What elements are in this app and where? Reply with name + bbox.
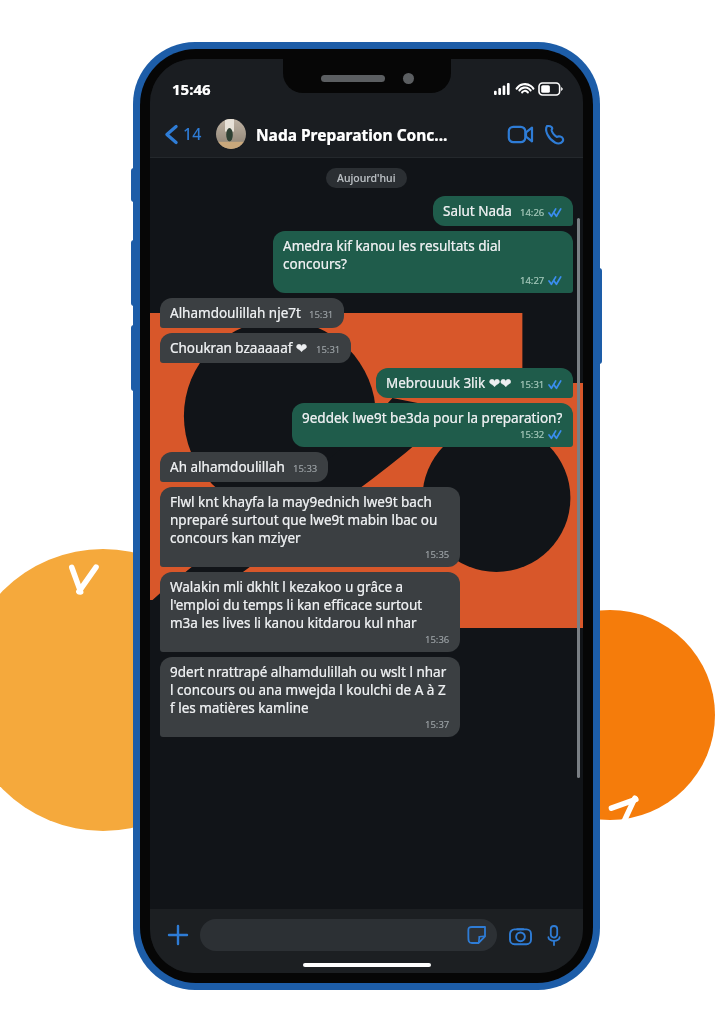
staticText: 15:37	[425, 718, 450, 731]
staticText: 14:27	[520, 274, 545, 287]
staticText: 15:35	[425, 548, 450, 561]
button[interactable]: Aujourd'hui	[326, 168, 407, 188]
button[interactable]: Amedra kif kanou les resultats dial conc…	[273, 231, 573, 293]
button[interactable]: Ah alhamdoulillah	[160, 452, 328, 482]
staticText: Ah alhamdoulillah	[170, 458, 285, 476]
staticText: Salut Nada	[443, 202, 512, 220]
button[interactable]: Voice call	[537, 117, 571, 151]
button[interactable]: Camera	[503, 918, 537, 952]
button[interactable]: Contact avatar	[216, 119, 246, 149]
staticText: Walakin mli dkhlt l kezakoo u grâce a l'…	[170, 578, 450, 632]
staticText: Flwl knt khayfa la may9ednich lwe9t bach…	[170, 493, 450, 547]
staticText: Choukran bzaaaaaf ❤️	[170, 339, 308, 357]
staticText: Alhamdoulillah nje7t	[170, 304, 301, 322]
button[interactable]: 9eddek lwe9t be3da pour la preparation?	[292, 403, 573, 447]
staticText: 14	[183, 123, 202, 145]
button[interactable]: Attach	[160, 917, 196, 953]
staticText: 15:32	[520, 428, 545, 441]
button[interactable]: Nada Preparation Conc...	[256, 124, 497, 145]
staticText: 14:26	[520, 206, 545, 219]
staticText: 9eddek lwe9t be3da pour la preparation?	[302, 409, 563, 427]
staticText: 15:31	[316, 343, 341, 356]
button[interactable]: Mebrouuuk 3lik ❤️❤️	[376, 368, 573, 398]
staticText: 15:33	[293, 462, 318, 475]
button[interactable]: Back, 14 unread	[162, 119, 206, 149]
button[interactable]: Voice message	[537, 918, 571, 952]
button[interactable]: Walakin mli dkhlt l kezakoo u grâce a l'…	[160, 572, 460, 652]
button[interactable]: Video call	[503, 117, 537, 151]
staticText: Mebrouuuk 3lik ❤️❤️	[386, 374, 512, 392]
button[interactable]: Flwl knt khayfa la may9ednich lwe9t bach…	[160, 487, 460, 567]
button[interactable]: Alhamdoulillah nje7t	[160, 298, 344, 328]
staticText: Amedra kif kanou les resultats dial conc…	[283, 237, 563, 273]
staticText: Aujourd'hui	[337, 171, 396, 185]
button[interactable]: Choukran bzaaaaaf ❤️	[160, 333, 351, 363]
staticText: 15:31	[309, 308, 334, 321]
button[interactable]: 9dert nrattrapé alhamdulillah ou wslt l …	[160, 657, 460, 737]
staticText: 9dert nrattrapé alhamdulillah ou wslt l …	[170, 663, 450, 717]
staticText: 15:36	[425, 633, 450, 646]
button[interactable]: Message	[200, 919, 497, 951]
button[interactable]: Salut Nada	[433, 196, 573, 226]
staticText: 15:46	[172, 79, 211, 99]
staticText: 15:31	[520, 378, 545, 391]
